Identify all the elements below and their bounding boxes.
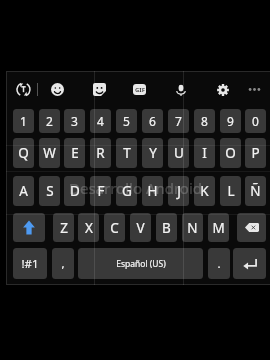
staticText: H — [147, 182, 158, 200]
button[interactable]: 3 — [64, 109, 85, 133]
button[interactable]: K — [194, 176, 215, 206]
button[interactable]: D — [64, 176, 85, 206]
staticText: L — [227, 182, 235, 200]
staticText: !#1 — [21, 256, 39, 272]
staticText: 6 — [149, 113, 156, 129]
button[interactable]: 9 — [220, 109, 241, 133]
staticText: D — [70, 182, 80, 200]
staticText: I — [202, 144, 207, 162]
staticText: Español (US) — [116, 258, 166, 270]
staticText: K — [200, 182, 209, 200]
staticText: C — [110, 219, 119, 237]
staticText: , — [61, 256, 65, 272]
button[interactable]: Switch language — [14, 80, 33, 99]
button[interactable]: H — [142, 176, 163, 206]
staticText: M — [212, 219, 225, 237]
staticText: Q — [18, 144, 29, 162]
staticText: Z — [60, 219, 68, 237]
button[interactable]: A — [13, 176, 34, 206]
staticText: E — [71, 144, 79, 162]
button[interactable]: T — [116, 138, 137, 168]
staticText: 9 — [227, 113, 234, 129]
button[interactable]: 2 — [39, 109, 60, 133]
button[interactable]: 7 — [168, 109, 189, 133]
button[interactable]: 6 — [142, 109, 163, 133]
button[interactable]: X — [78, 213, 99, 242]
staticText: S — [46, 182, 54, 200]
button[interactable]: , — [52, 248, 74, 279]
button[interactable]: W — [39, 138, 60, 168]
button[interactable]: C — [104, 213, 125, 242]
button[interactable]: I — [194, 138, 215, 168]
button[interactable]: Español (US) — [78, 248, 203, 279]
staticText: X — [85, 219, 93, 237]
button[interactable]: !#1 — [13, 248, 47, 279]
staticText: W — [43, 144, 56, 162]
staticText: 7 — [175, 113, 182, 129]
staticText: 2 — [46, 113, 53, 129]
button[interactable]: R — [90, 138, 111, 168]
staticText: 8 — [201, 113, 208, 129]
button[interactable]: More options — [245, 80, 264, 99]
button[interactable]: J — [168, 176, 189, 206]
button[interactable]: O — [220, 138, 241, 168]
button[interactable]: Z — [53, 213, 74, 242]
button[interactable]: 0 — [245, 109, 266, 133]
staticText: Y — [149, 144, 157, 162]
staticText: 3 — [71, 113, 78, 129]
staticText: 1 — [20, 113, 27, 129]
staticText: 4 — [97, 113, 104, 129]
button[interactable]: Y — [142, 138, 163, 168]
staticText: 0 — [252, 113, 259, 129]
button[interactable]: S — [39, 176, 60, 206]
button[interactable]: F — [90, 176, 111, 206]
staticText: Ñ — [250, 182, 261, 200]
button[interactable]: Emoji — [48, 80, 67, 99]
button[interactable]: N — [182, 213, 203, 242]
staticText: P — [251, 144, 260, 162]
button[interactable]: Stickers — [90, 80, 109, 99]
staticText: V — [136, 219, 145, 237]
button[interactable]: . — [208, 248, 230, 279]
button[interactable]: G — [116, 176, 137, 206]
button[interactable]: E — [64, 138, 85, 168]
staticText: A — [19, 182, 28, 200]
button[interactable]: U — [168, 138, 189, 168]
button[interactable]: 5 — [116, 109, 137, 133]
button[interactable]: B — [156, 213, 177, 242]
button[interactable]: M — [208, 213, 229, 242]
button[interactable]: 8 — [194, 109, 215, 133]
button[interactable]: P — [245, 138, 266, 168]
button[interactable]: Ñ — [245, 176, 266, 206]
button[interactable] — [233, 248, 266, 279]
staticText: G — [122, 182, 132, 200]
staticText: . — [217, 256, 221, 272]
staticText: 5 — [123, 113, 130, 129]
staticText: J — [177, 182, 181, 200]
staticText: Desarrollo Android — [69, 178, 203, 198]
staticText: T — [123, 144, 131, 162]
button[interactable]: Q — [13, 138, 34, 168]
button[interactable]: L — [220, 176, 241, 206]
staticText: N — [187, 219, 198, 237]
button[interactable]: Settings — [213, 80, 232, 99]
staticText: O — [225, 144, 236, 162]
button[interactable] — [237, 213, 266, 242]
button[interactable]: 1 — [13, 109, 34, 133]
button[interactable]: GIF — [130, 80, 149, 99]
button[interactable]: V — [130, 213, 151, 242]
staticText: U — [174, 144, 184, 162]
staticText: R — [96, 144, 105, 162]
button[interactable] — [13, 213, 45, 242]
staticText: B — [162, 219, 171, 237]
button[interactable]: Voice input — [171, 80, 190, 99]
button[interactable]: 4 — [90, 109, 111, 133]
staticText: F — [97, 182, 105, 200]
staticText: GIF — [135, 86, 145, 94]
